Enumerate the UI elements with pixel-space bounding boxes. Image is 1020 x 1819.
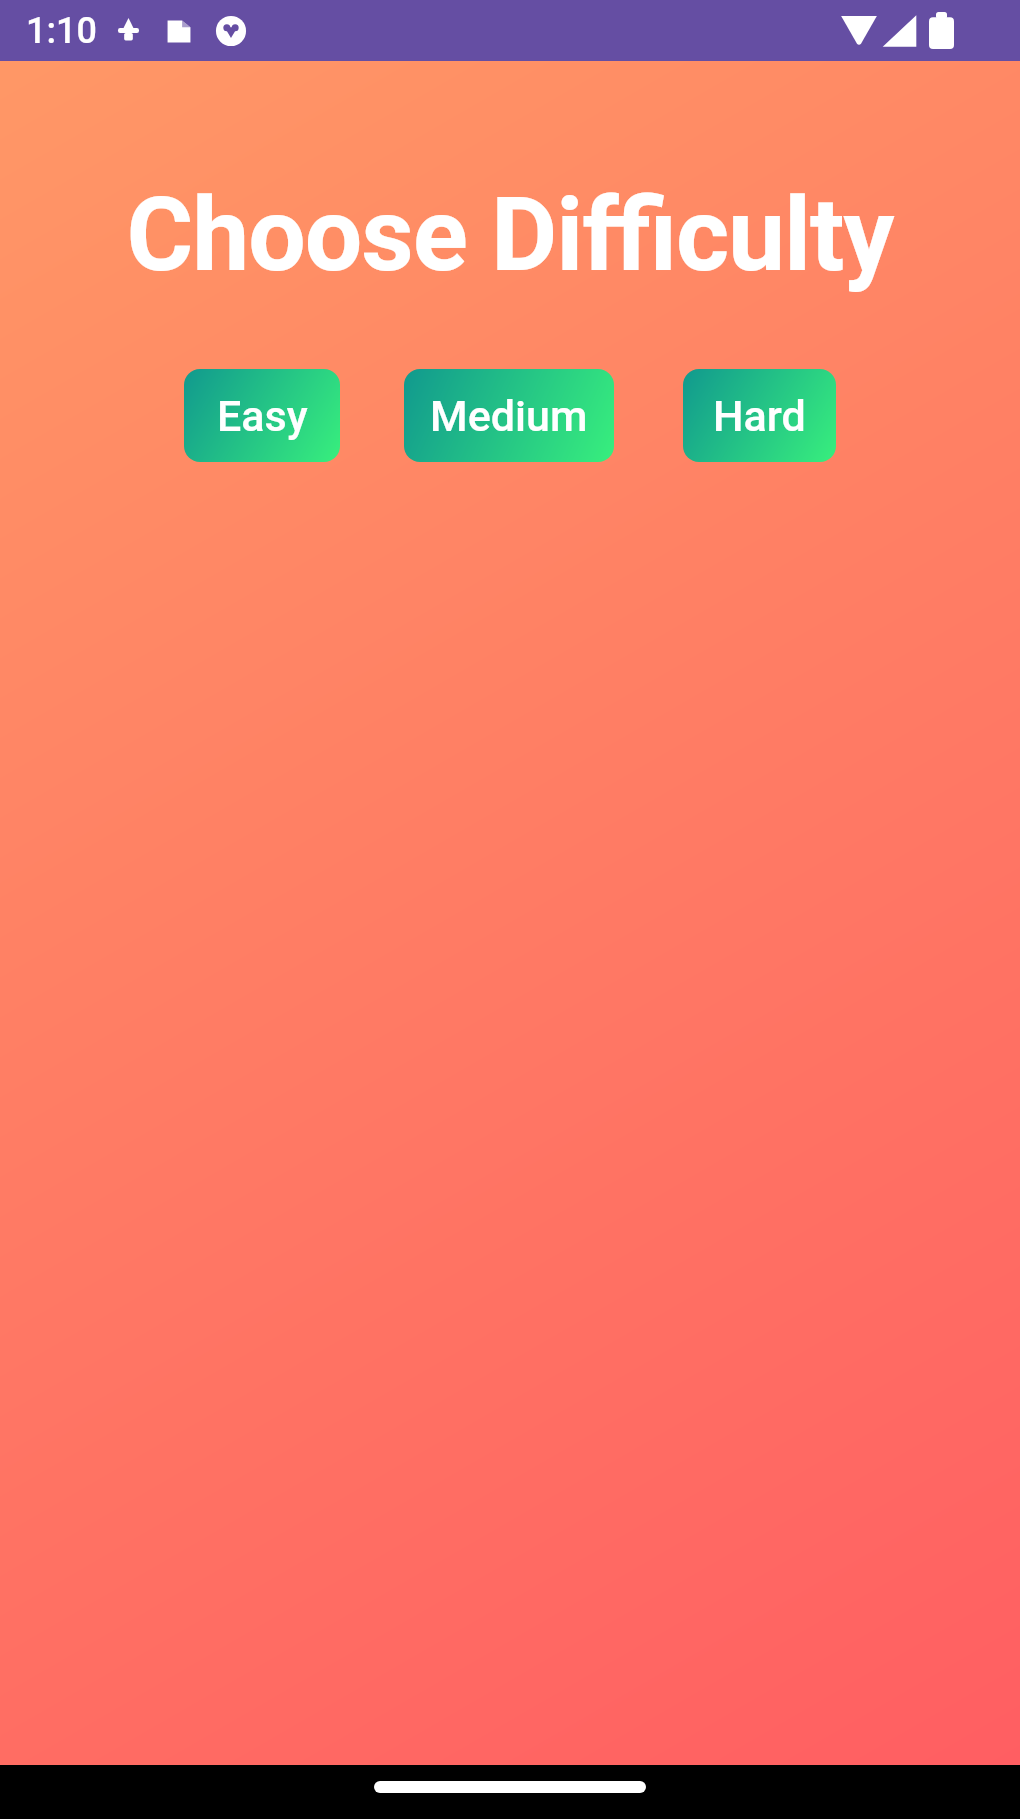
other: App notification xyxy=(215,15,247,47)
other: Notification xyxy=(166,18,192,44)
other: Battery xyxy=(929,12,954,49)
staticText: Choose Difficulty xyxy=(0,175,1020,295)
button[interactable]: Medium xyxy=(404,369,614,462)
other: Cast xyxy=(113,15,144,46)
button[interactable]: Easy xyxy=(184,369,340,462)
button[interactable]: Hard xyxy=(683,369,836,462)
staticText: Hard xyxy=(713,391,806,441)
staticText: Easy xyxy=(217,391,308,441)
staticText: Medium xyxy=(430,391,588,441)
staticText: 1:10 xyxy=(26,10,97,52)
button[interactable]: Home xyxy=(374,1781,646,1793)
other: Wi-Fi xyxy=(840,13,878,49)
other: Mobile signal xyxy=(882,13,917,49)
